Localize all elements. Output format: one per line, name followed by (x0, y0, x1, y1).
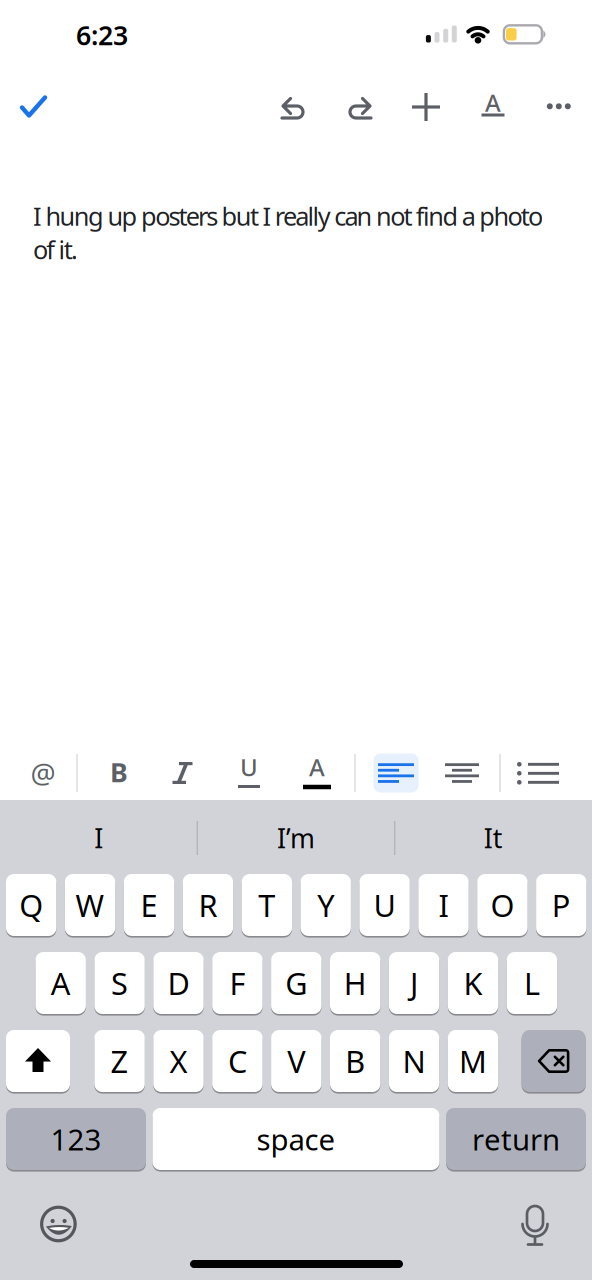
staticText: A (51, 963, 71, 1003)
button[interactable]: E (124, 874, 174, 936)
staticText: U (374, 885, 396, 925)
button[interactable]: B (330, 1030, 380, 1092)
button[interactable]: Delete (522, 1030, 586, 1092)
button[interactable]: Italic (160, 749, 204, 797)
button[interactable]: D (153, 952, 204, 1014)
staticText: C (228, 1041, 247, 1081)
button[interactable]: Q (6, 874, 56, 936)
button[interactable]: P (536, 874, 586, 936)
button[interactable]: T (242, 874, 292, 936)
staticText: N (403, 1041, 426, 1081)
staticText: P (552, 885, 571, 925)
staticText: D (167, 963, 189, 1003)
staticText: E (140, 885, 157, 925)
staticText: L (524, 963, 540, 1003)
staticText: I (438, 885, 448, 925)
button[interactable]: Dictate (515, 1207, 555, 1251)
button[interactable]: Redo (337, 85, 381, 129)
button[interactable]: return (446, 1108, 586, 1170)
staticText: H (344, 963, 367, 1003)
button[interactable]: L (507, 952, 557, 1014)
button[interactable]: V (271, 1030, 321, 1092)
button[interactable]: Bulleted list (517, 749, 561, 797)
button[interactable]: Insert (404, 85, 448, 129)
button[interactable]: M (448, 1030, 498, 1092)
staticText: W (76, 885, 105, 925)
button[interactable]: More options (537, 85, 581, 129)
button[interactable]: Bold (97, 748, 141, 796)
staticText: @ (30, 754, 55, 792)
staticText: Q (19, 885, 43, 925)
staticText: B (110, 754, 128, 790)
staticText: V (287, 1041, 305, 1081)
staticText: return (472, 1119, 560, 1158)
button[interactable]: R (183, 874, 233, 936)
button[interactable]: U (359, 874, 410, 936)
button[interactable]: O (477, 874, 528, 936)
staticText: R (198, 885, 217, 925)
staticText: 123 (50, 1119, 101, 1158)
button[interactable]: G (271, 952, 321, 1014)
button[interactable]: F (212, 952, 263, 1014)
staticText: Y (317, 885, 334, 925)
staticText: T (258, 885, 275, 925)
button[interactable]: Emoji (41, 1207, 75, 1241)
button[interactable]: Shift (6, 1030, 70, 1092)
button[interactable]: 123 (6, 1108, 146, 1170)
button[interactable]: It (398, 808, 588, 868)
button[interactable]: C (212, 1030, 263, 1092)
staticText: of it. (33, 233, 78, 266)
button[interactable]: Align center (440, 749, 484, 797)
staticText: I hung up posters but I really can not f… (33, 199, 543, 233)
button[interactable]: N (389, 1030, 439, 1092)
staticText: I (94, 820, 103, 856)
button[interactable]: Done (12, 85, 56, 129)
staticText: O (490, 885, 514, 925)
staticText: A (485, 87, 501, 118)
button[interactable]: Align left (373, 749, 418, 797)
staticText: It (484, 820, 503, 856)
staticText: U (240, 751, 258, 783)
button[interactable]: Z (94, 1030, 145, 1092)
staticText: S (111, 963, 128, 1003)
button[interactable]: Y (300, 874, 351, 936)
staticText: 6:23 (76, 17, 128, 53)
button[interactable]: Text color (295, 749, 339, 797)
button[interactable]: I’m (201, 808, 391, 868)
button[interactable]: I (4, 808, 194, 868)
staticText: A (309, 751, 325, 783)
button[interactable]: space (152, 1108, 439, 1170)
button[interactable]: A (35, 952, 86, 1014)
staticText: space (256, 1119, 335, 1158)
button[interactable]: J (389, 952, 439, 1014)
staticText: I’m (277, 820, 315, 856)
staticText: X (169, 1041, 187, 1081)
button[interactable]: Mention (21, 749, 65, 797)
button[interactable]: H (330, 952, 380, 1014)
button[interactable]: K (448, 952, 498, 1014)
button[interactable]: W (65, 874, 115, 936)
button[interactable]: S (94, 952, 145, 1014)
staticText: J (410, 963, 418, 1003)
staticText: B (345, 1041, 365, 1081)
button[interactable]: Underline (227, 748, 271, 796)
button[interactable]: I (418, 874, 469, 936)
staticText: F (229, 963, 245, 1003)
staticText: G (285, 963, 307, 1003)
button[interactable]: Format text (471, 85, 515, 129)
button[interactable]: Undo (272, 85, 316, 129)
staticText: M (459, 1041, 487, 1081)
staticText: K (463, 963, 482, 1003)
staticText: Z (111, 1041, 129, 1081)
button[interactable]: X (153, 1030, 204, 1092)
